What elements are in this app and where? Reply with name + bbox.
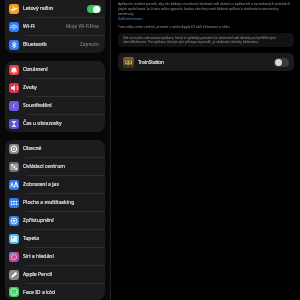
button[interactable]: Letový režim xyxy=(5,0,105,17)
staticText: Zde se budou zobrazovat aplikace, které … xyxy=(123,36,289,44)
staticText: TrainStation xyxy=(138,59,164,65)
button[interactable]: Siri a hledání xyxy=(5,248,105,265)
button[interactable]: Zobrazení a jas xyxy=(5,176,105,193)
staticText: Aplikacím můžete povolit, aby vás žádaly… xyxy=(118,1,294,16)
button[interactable]: Oznámení xyxy=(5,61,105,78)
staticText: Letový režim xyxy=(23,5,54,12)
staticText: Tuto volbu nelze změnit, protože s vaším… xyxy=(118,24,231,28)
staticText: Zpřístupnění xyxy=(23,217,54,224)
staticText: Moje Wi-FiFina xyxy=(66,23,99,30)
button[interactable]: Plocha a multitasking xyxy=(5,194,105,211)
staticText: Face ID a kód xyxy=(23,289,56,296)
button[interactable]: Wi-Fi xyxy=(5,18,105,35)
staticText: Soustředění xyxy=(23,102,52,109)
staticText: Ovládací centrum xyxy=(23,163,66,170)
button[interactable]: Zpřístupnění xyxy=(5,212,105,229)
staticText: Zvuky xyxy=(23,84,37,91)
staticText: Oznámení xyxy=(23,66,48,73)
button[interactable]: Ovládací centrum xyxy=(5,158,105,175)
button[interactable]: Zapnuto xyxy=(87,5,101,13)
staticText: Obecné xyxy=(23,145,42,152)
staticText: Bluetooth xyxy=(23,41,47,48)
button[interactable]: Zvuky xyxy=(5,79,105,96)
staticText: Další informace… xyxy=(118,16,145,20)
button[interactable]: Tapeta xyxy=(5,230,105,247)
staticText: Zapnuto xyxy=(80,41,99,48)
button[interactable]: Apple Pencil xyxy=(5,266,105,283)
button[interactable]: Face ID a kód xyxy=(5,284,105,300)
staticText: Siri a hledání xyxy=(23,253,54,260)
button[interactable]: TrainStation xyxy=(118,53,294,71)
staticText: Plocha a multitasking xyxy=(23,199,75,206)
staticText: Čas u obrazovky xyxy=(23,120,62,127)
button[interactable]: Soustředění xyxy=(5,97,105,114)
staticText: Wi-Fi xyxy=(23,23,35,30)
button[interactable]: Obecné xyxy=(5,140,105,157)
button[interactable]: Bluetooth xyxy=(5,36,105,53)
button[interactable]: Čas u obrazovky xyxy=(5,115,105,132)
button[interactable]: Povolit sledování xyxy=(274,58,289,67)
staticText: Zobrazení a jas xyxy=(23,181,59,188)
staticText: Tapeta xyxy=(23,235,39,242)
staticText: Apple Pencil xyxy=(23,271,53,278)
